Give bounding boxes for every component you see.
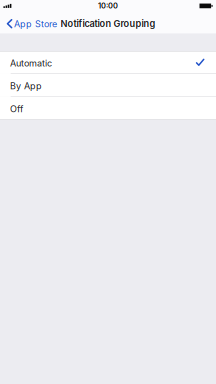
- staticText: Off: [10, 104, 23, 115]
- button[interactable]: By App: [0, 74, 216, 97]
- button[interactable]: Automatic: [0, 51, 216, 74]
- staticText: 10:00: [98, 1, 118, 10]
- button[interactable]: App Store: [0, 14, 61, 33]
- button[interactable]: Off: [0, 97, 216, 120]
- staticText: App Store: [14, 18, 57, 29]
- staticText: Notification Grouping: [60, 18, 155, 29]
- staticText: Automatic: [10, 58, 52, 69]
- staticText: By App: [10, 80, 42, 91]
